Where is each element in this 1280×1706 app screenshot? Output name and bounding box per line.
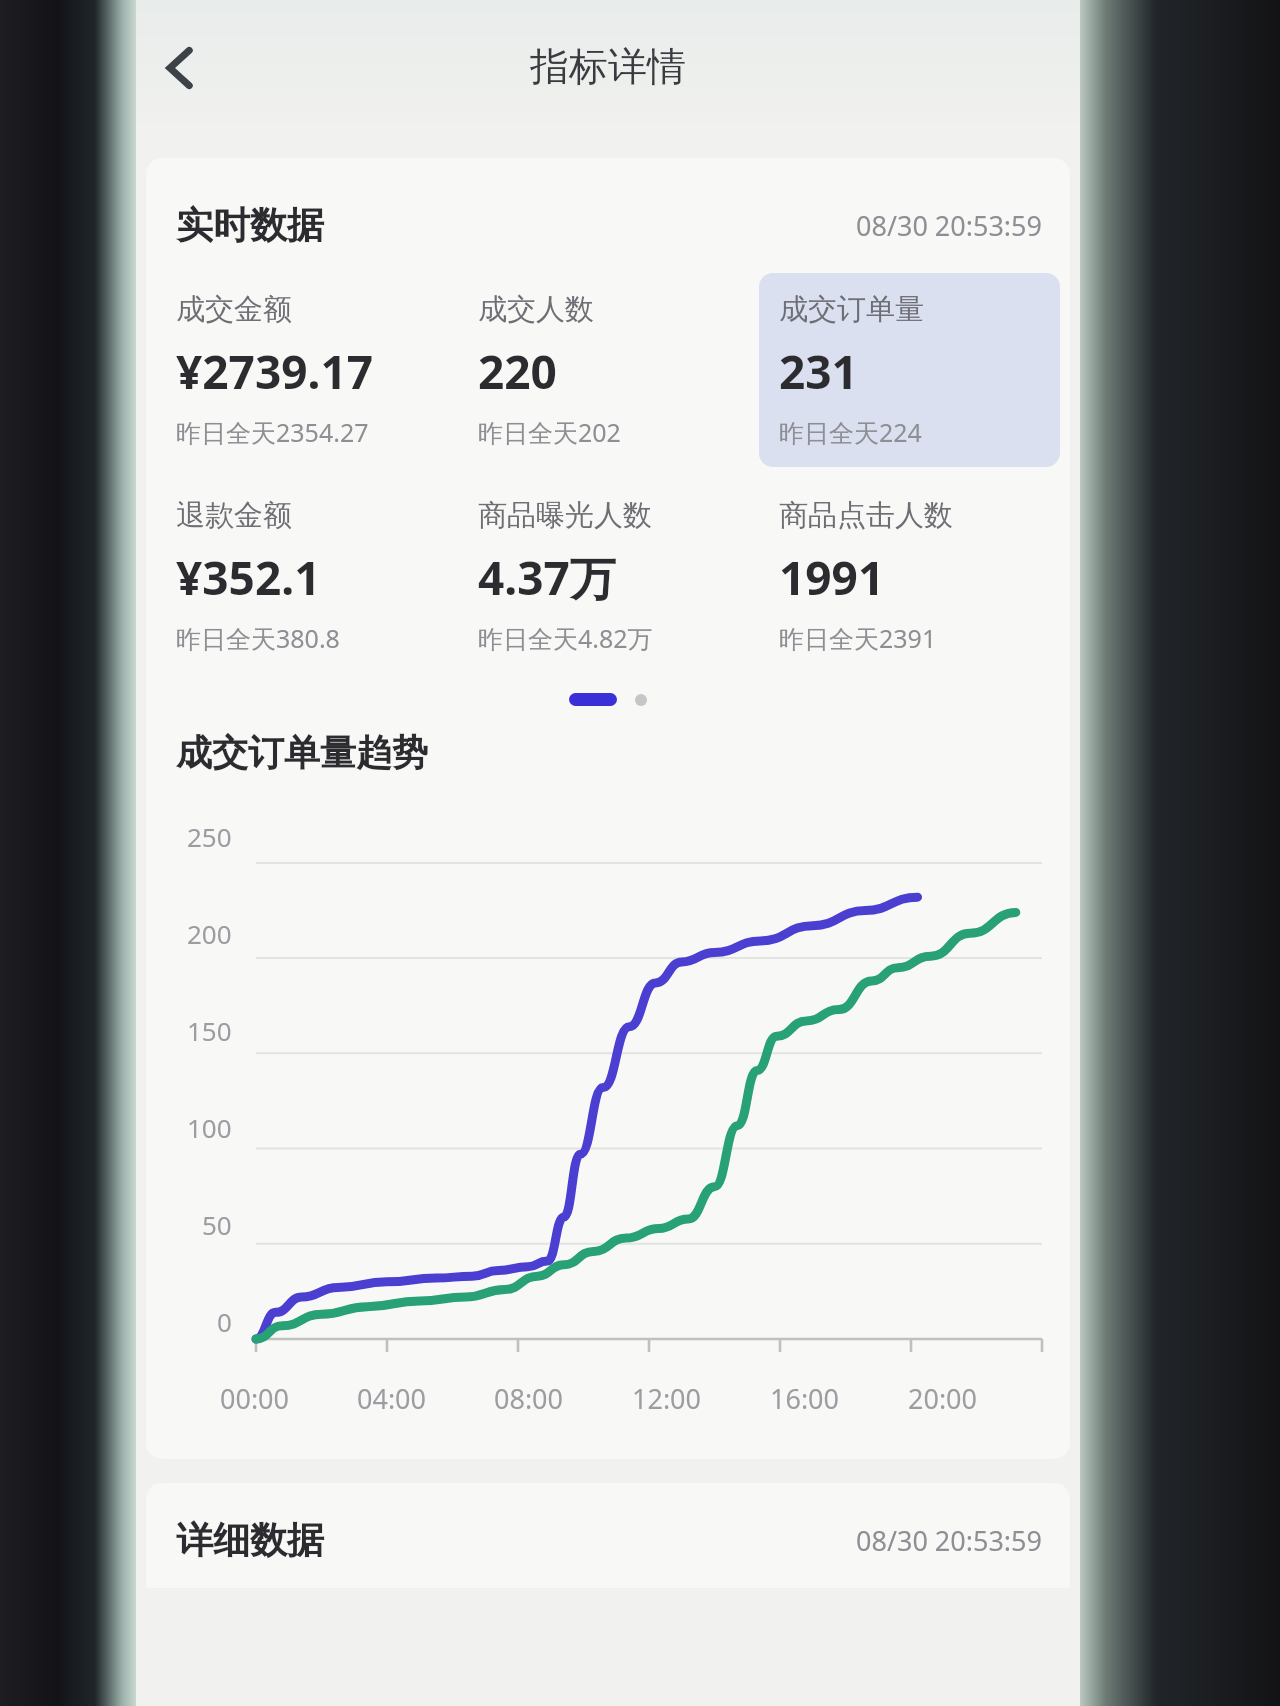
staticText: 100 (187, 1110, 232, 1145)
button[interactable]: Back (138, 26, 222, 110)
staticText: ¥352.1 (176, 546, 321, 609)
staticText: 50 (202, 1207, 232, 1242)
button[interactable]: 商品曝光人数 (458, 479, 759, 673)
staticText: 详细数据 (176, 1517, 324, 1564)
staticText: 昨日全天2391 (779, 621, 937, 655)
staticText: 250 (187, 819, 232, 854)
staticText: 12:00 (632, 1380, 702, 1417)
staticText: 指标详情 (530, 42, 686, 91)
staticText: 成交金额 (176, 291, 292, 328)
staticText: 220 (478, 340, 557, 403)
staticText: 昨日全天4.82万 (478, 621, 653, 655)
staticText: 20:00 (908, 1380, 978, 1417)
staticText: 商品曝光人数 (478, 497, 652, 534)
staticText: 231 (779, 340, 858, 403)
staticText: 200 (187, 916, 232, 951)
staticText: 退款金额 (176, 497, 292, 534)
staticText: 0 (217, 1304, 232, 1339)
staticText: 昨日全天380.8 (176, 621, 340, 655)
staticText: 1991 (779, 546, 885, 609)
button[interactable]: 成交人数 (458, 273, 759, 467)
button[interactable]: 商品点击人数 (759, 479, 1060, 673)
staticText: 08/30 20:53:59 (856, 207, 1042, 244)
button[interactable]: 成交订单量 (759, 273, 1060, 467)
staticText: 成交人数 (478, 291, 594, 328)
staticText: 成交订单量 (779, 291, 924, 328)
staticText: 00:00 (220, 1380, 290, 1417)
staticText: 4.37万 (478, 546, 616, 609)
staticText: 150 (187, 1013, 232, 1048)
staticText: 昨日全天202 (478, 415, 621, 449)
staticText: 昨日全天2354.27 (176, 415, 369, 449)
staticText: 实时数据 (176, 202, 324, 249)
button[interactable]: 退款金额 (156, 479, 458, 673)
staticText: 16:00 (770, 1380, 840, 1417)
staticText: 昨日全天224 (779, 415, 922, 449)
staticText: 08/30 20:53:59 (856, 1522, 1042, 1559)
staticText: 成交订单量趋势 (176, 730, 428, 775)
staticText: 商品点击人数 (779, 497, 953, 534)
staticText: ¥2739.17 (176, 340, 374, 403)
staticText: 04:00 (357, 1380, 427, 1417)
staticText: 08:00 (494, 1380, 564, 1417)
button[interactable]: 成交金额 (156, 273, 458, 467)
